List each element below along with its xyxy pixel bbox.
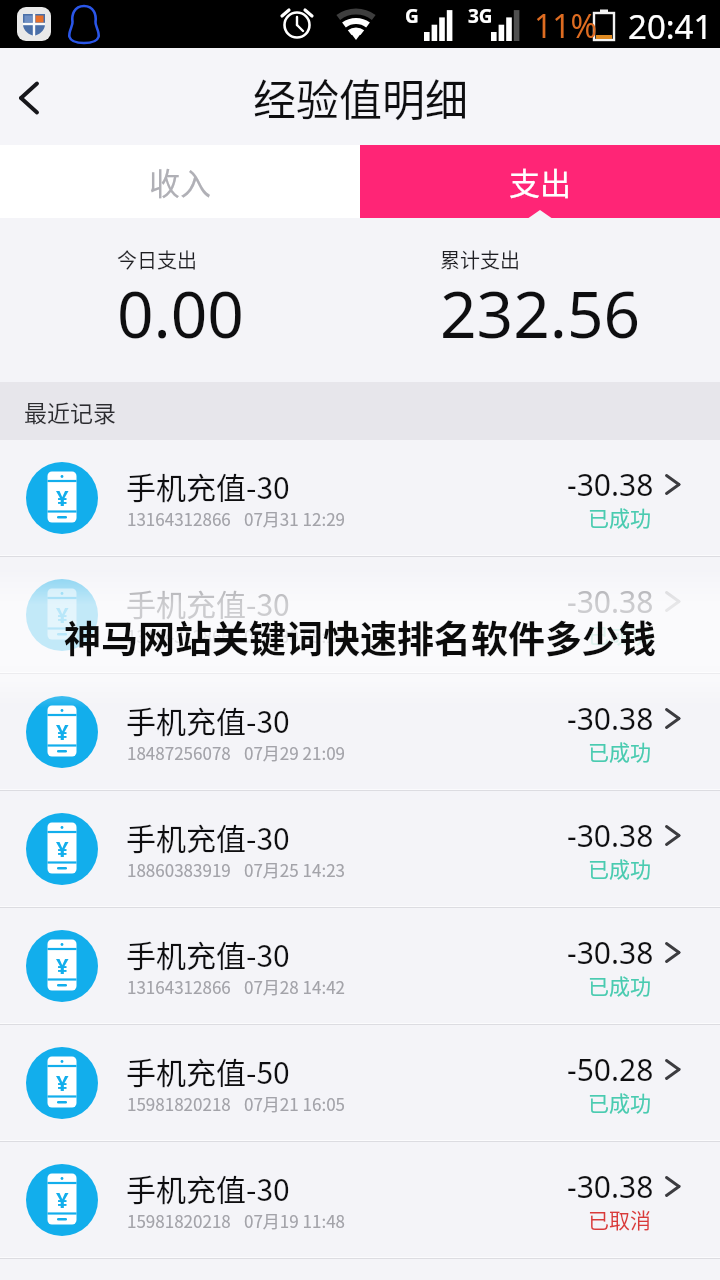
staticText: 手机充值-30 xyxy=(126,815,290,858)
staticText: ¥ xyxy=(56,482,69,512)
button[interactable]: ¥ xyxy=(0,674,720,791)
button[interactable]: 收入 xyxy=(0,145,360,218)
staticText: -30.38 xyxy=(567,698,654,739)
staticText: 已成功 xyxy=(588,619,651,649)
staticText: 今日支出 xyxy=(117,245,197,270)
staticText: 0.00 xyxy=(117,270,244,357)
staticText: 07月30 09:15 xyxy=(244,623,346,648)
button[interactable]: Back xyxy=(0,60,74,134)
staticText: -30.38 xyxy=(567,464,654,505)
staticText: 18487256078 xyxy=(127,740,231,765)
staticText: 13164312866 xyxy=(127,623,231,648)
staticText: 15981820218 xyxy=(127,1208,231,1233)
staticText: 11% xyxy=(534,4,598,48)
staticText: ¥ xyxy=(56,833,69,863)
staticText: 已成功 xyxy=(588,1087,651,1117)
staticText: -30.38 xyxy=(567,815,654,856)
button[interactable]: ¥ xyxy=(0,1142,720,1259)
staticText: -30.38 xyxy=(567,932,654,973)
staticText: 20:41 xyxy=(628,4,713,49)
staticText: 手机充值-30 xyxy=(126,932,290,975)
staticText: 已取消 xyxy=(588,1204,651,1234)
staticText: 07月19 11:48 xyxy=(244,1208,346,1233)
staticText: -50.28 xyxy=(567,1049,654,1090)
button[interactable]: ¥ xyxy=(0,440,720,557)
staticText: -30.38 xyxy=(567,581,654,622)
staticText: 神马网站关键词快速排名软件多少钱 xyxy=(64,610,656,664)
staticText: 最近记录 xyxy=(24,395,116,428)
button[interactable]: ¥ xyxy=(0,908,720,1025)
button[interactable]: ¥ xyxy=(0,557,720,674)
staticText: G xyxy=(405,3,419,29)
staticText: ¥ xyxy=(56,599,69,629)
staticText: 已成功 xyxy=(588,853,651,883)
staticText: 经验值明细 xyxy=(253,66,468,128)
staticText: 18860383919 xyxy=(127,857,231,882)
staticText: 07月28 14:42 xyxy=(244,974,346,999)
staticText: 收入 xyxy=(149,159,211,204)
staticText: 手机充值-30 xyxy=(126,1166,290,1209)
staticText: ¥ xyxy=(56,1067,69,1097)
staticText: 累计支出 xyxy=(440,245,520,270)
button[interactable]: ¥ xyxy=(0,791,720,908)
staticText: 手机充值-30 xyxy=(126,581,290,624)
staticText: 232.56 xyxy=(440,270,641,357)
staticText: 07月21 16:05 xyxy=(244,1091,346,1116)
staticText: 3G xyxy=(468,3,493,29)
staticText: 手机充值-50 xyxy=(126,1049,290,1092)
button[interactable]: ¥ xyxy=(0,1025,720,1142)
staticText: -30.38 xyxy=(567,1166,654,1207)
staticText: 已成功 xyxy=(588,970,651,1000)
staticText: 13164312866 xyxy=(127,974,231,999)
staticText: 已成功 xyxy=(588,736,651,766)
staticText: 07月29 21:09 xyxy=(244,740,346,765)
staticText: 07月31 12:29 xyxy=(244,506,346,531)
staticText: 13164312866 xyxy=(127,506,231,531)
staticText: 07月25 14:23 xyxy=(244,857,346,882)
staticText: ¥ xyxy=(56,1184,69,1214)
staticText: 手机充值-30 xyxy=(126,464,290,507)
button[interactable]: 支出 xyxy=(360,145,720,218)
staticText: 支出 xyxy=(509,159,571,204)
staticText: ¥ xyxy=(56,950,69,980)
staticText: 15981820218 xyxy=(127,1091,231,1116)
staticText: 手机充值-30 xyxy=(126,698,290,741)
staticText: ¥ xyxy=(56,716,69,746)
staticText: 已成功 xyxy=(588,502,651,532)
